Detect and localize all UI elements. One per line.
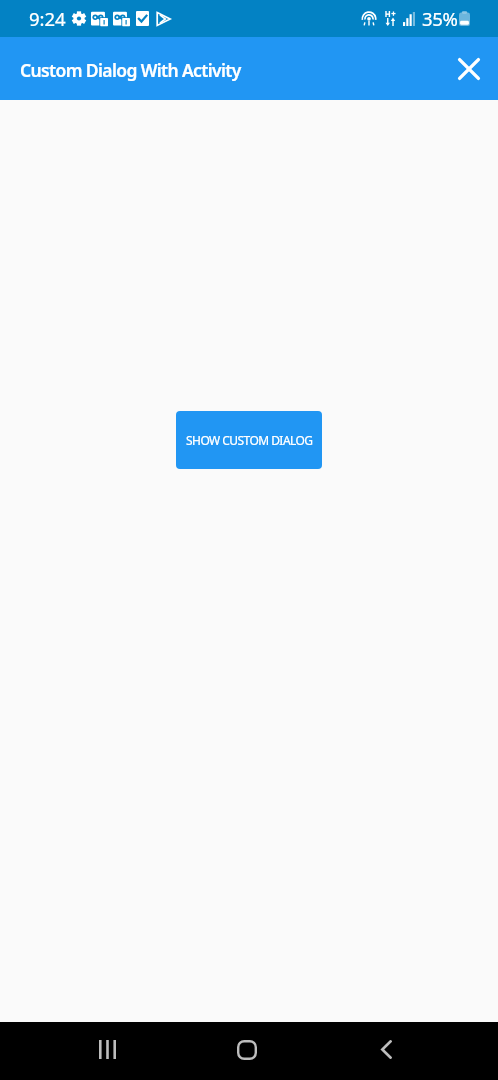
staticText: 9:24 <box>29 6 66 31</box>
button[interactable]: SHOW CUSTOM DIALOG <box>176 411 322 469</box>
staticText: 35% <box>422 6 458 31</box>
staticText: Custom Dialog With Activity <box>20 58 241 82</box>
button[interactable]: Back <box>362 1025 411 1074</box>
button[interactable]: Close <box>446 46 492 92</box>
button[interactable]: Recents <box>83 1025 132 1074</box>
staticText: SHOW CUSTOM DIALOG <box>186 432 313 448</box>
button[interactable]: Home <box>222 1025 271 1074</box>
